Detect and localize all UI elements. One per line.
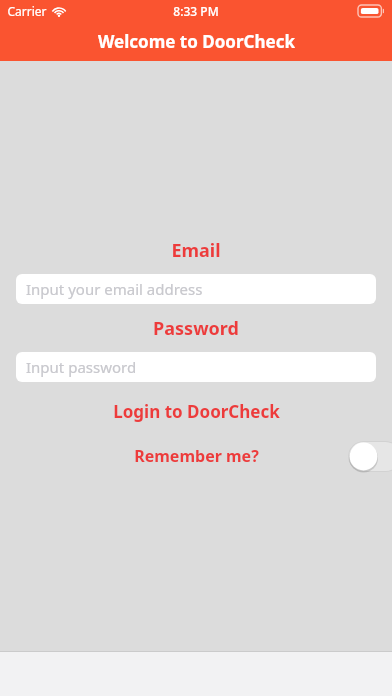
staticText: Remember me? [134,445,259,467]
button[interactable]: Input your email address [16,274,376,304]
staticText: Password [153,316,239,341]
staticText: Email [171,238,221,263]
staticText: Welcome to DoorCheck [98,30,295,53]
staticText: 8:33 PM [173,3,219,19]
button[interactable]: Login to DoorCheck [0,400,392,423]
button[interactable]: Input password [16,352,376,382]
staticText: Carrier [7,3,47,19]
staticText: Input password [26,357,137,377]
staticText: Login to DoorCheck [113,400,280,423]
button[interactable]: Remember me toggle [348,441,392,472]
staticText: Input your email address [26,279,203,299]
